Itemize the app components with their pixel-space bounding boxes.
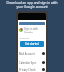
button[interactable]: Get started bbox=[20, 41, 44, 47]
staticText: Privacy Check bbox=[19, 68, 36, 72]
button[interactable]: Sign in with Google bbox=[18, 27, 46, 33]
other: Info bbox=[42, 61, 45, 64]
staticText: Sign in with Google bbox=[24, 27, 46, 33]
button[interactable] bbox=[19, 22, 45, 25]
other: Info bbox=[42, 68, 45, 71]
button[interactable]: Calendar Sync bbox=[19, 58, 45, 67]
button[interactable]: Mail Account bbox=[19, 49, 45, 58]
staticText: Calendar Sync bbox=[19, 61, 37, 65]
staticText: Continue bbox=[19, 36, 30, 39]
staticText: Download an app and sign in with your Go… bbox=[3, 1, 61, 9]
other: Info bbox=[42, 52, 45, 55]
staticText: Get started bbox=[25, 42, 39, 46]
button[interactable]: Privacy Check bbox=[19, 67, 45, 72]
staticText: Mail Account bbox=[19, 52, 35, 56]
